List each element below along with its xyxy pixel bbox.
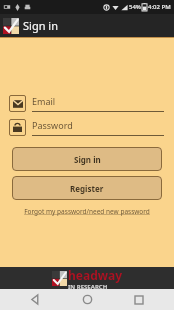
staticText: IN RESEARCH [68,283,108,289]
staticText: Register [70,183,104,194]
staticText: headway [68,267,123,283]
staticText: Email [32,95,56,107]
button[interactable]: Sign in [12,147,162,171]
button[interactable]: Home [70,289,104,310]
staticText: 4:02 PM [148,3,171,11]
button[interactable]: Forgot my password/need new password [0,207,174,216]
button[interactable]: Back [18,289,52,310]
staticText: Password [32,119,73,131]
button[interactable]: Email [9,95,164,112]
staticText: Forgot my password/need new password [24,207,150,216]
button[interactable]: Password [9,119,164,136]
staticText: Sign in [23,18,58,33]
staticText: 54% [129,3,141,11]
button[interactable]: Recent apps [122,289,156,310]
button[interactable]: Register [12,176,162,200]
staticText: Sign in [74,154,101,165]
